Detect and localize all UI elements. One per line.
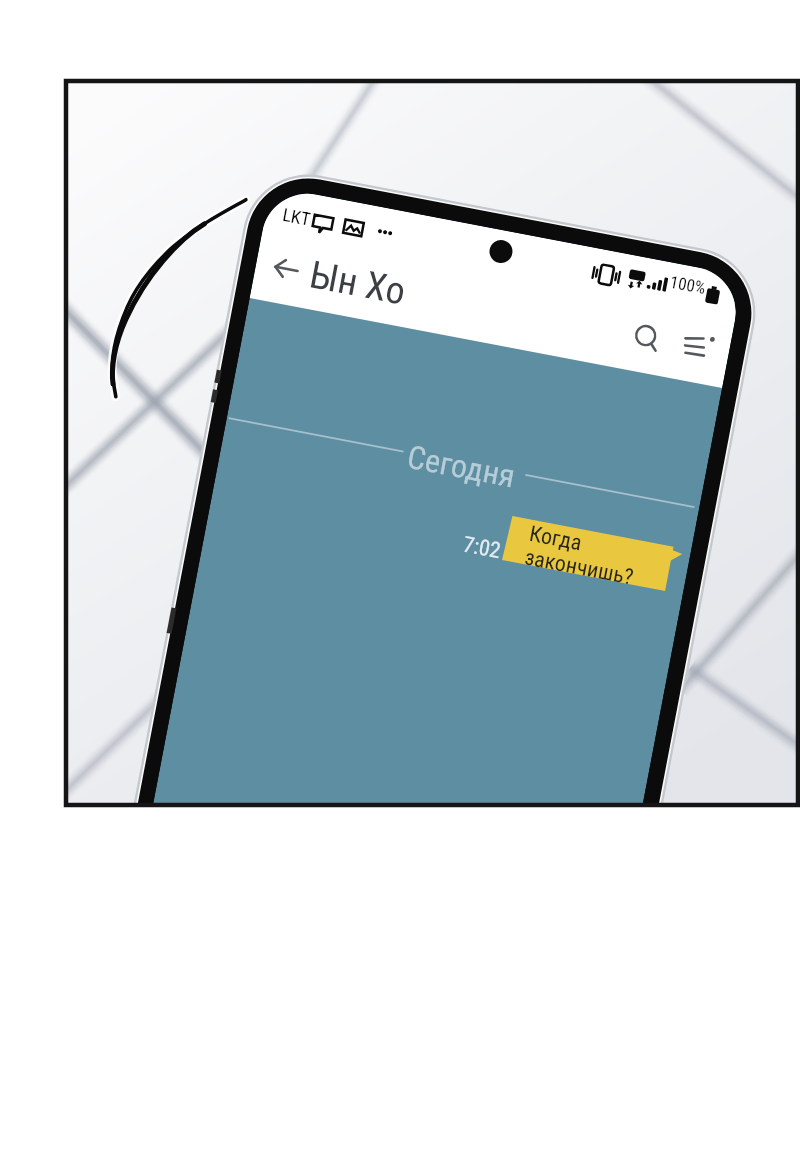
staticText: 100% xyxy=(668,272,707,298)
button[interactable]: Search xyxy=(623,315,667,359)
button[interactable]: Menu xyxy=(675,322,722,368)
staticText: LKT xyxy=(281,204,312,230)
staticText: Сегодня xyxy=(404,438,518,496)
button[interactable] xyxy=(502,516,673,591)
button[interactable]: Back xyxy=(264,249,310,296)
staticText: Когда закончишь? xyxy=(523,521,641,590)
staticText: Ын Хо xyxy=(306,252,410,315)
staticText: 7:02 xyxy=(461,532,503,564)
